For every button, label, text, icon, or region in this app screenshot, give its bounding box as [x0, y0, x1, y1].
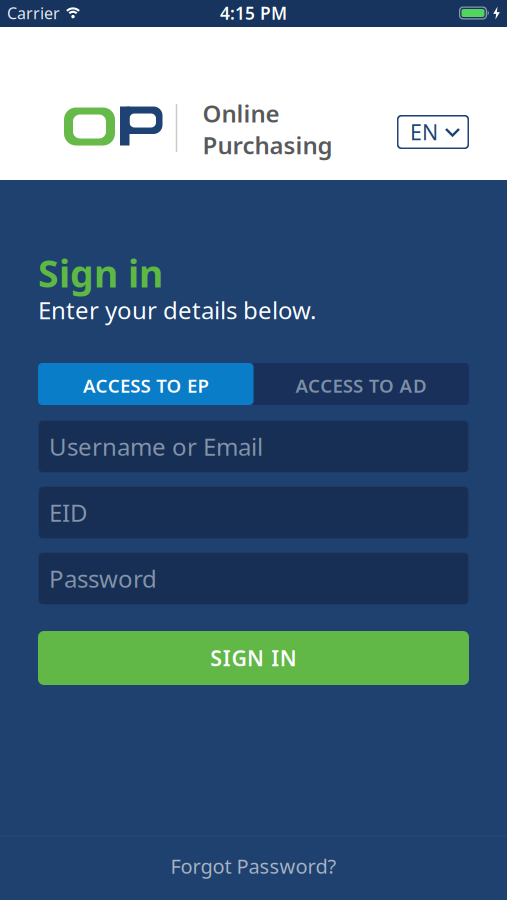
- textField[interactable]: Username or Email: [38, 420, 469, 473]
- staticText: EN: [410, 118, 438, 146]
- button[interactable]: ACCESS TO EP: [38, 363, 253, 405]
- staticText: 4:15 PM: [220, 1, 287, 24]
- button[interactable]: SIGN IN: [38, 631, 469, 685]
- staticText: ACCESS TO EP: [83, 373, 208, 398]
- staticText: Sign in: [38, 248, 163, 298]
- staticText: Online: [202, 97, 279, 129]
- button[interactable]: ACCESS TO AD: [253, 363, 469, 405]
- staticText: Forgot Password?: [170, 853, 336, 879]
- staticText: Purchasing: [202, 129, 332, 161]
- button[interactable]: Forgot Password?: [170, 853, 336, 879]
- button[interactable]: EN: [397, 115, 469, 149]
- staticText: Enter your details below.: [38, 294, 316, 326]
- textField[interactable]: EID: [38, 486, 469, 539]
- staticText: Carrier: [7, 2, 60, 24]
- staticText: SIGN IN: [210, 644, 297, 672]
- staticText: ACCESS TO AD: [296, 373, 427, 398]
- staticText: EID: [49, 497, 88, 528]
- staticText: Password: [49, 563, 157, 594]
- textField[interactable]: Password: [38, 552, 469, 605]
- staticText: Username or Email: [49, 431, 263, 462]
